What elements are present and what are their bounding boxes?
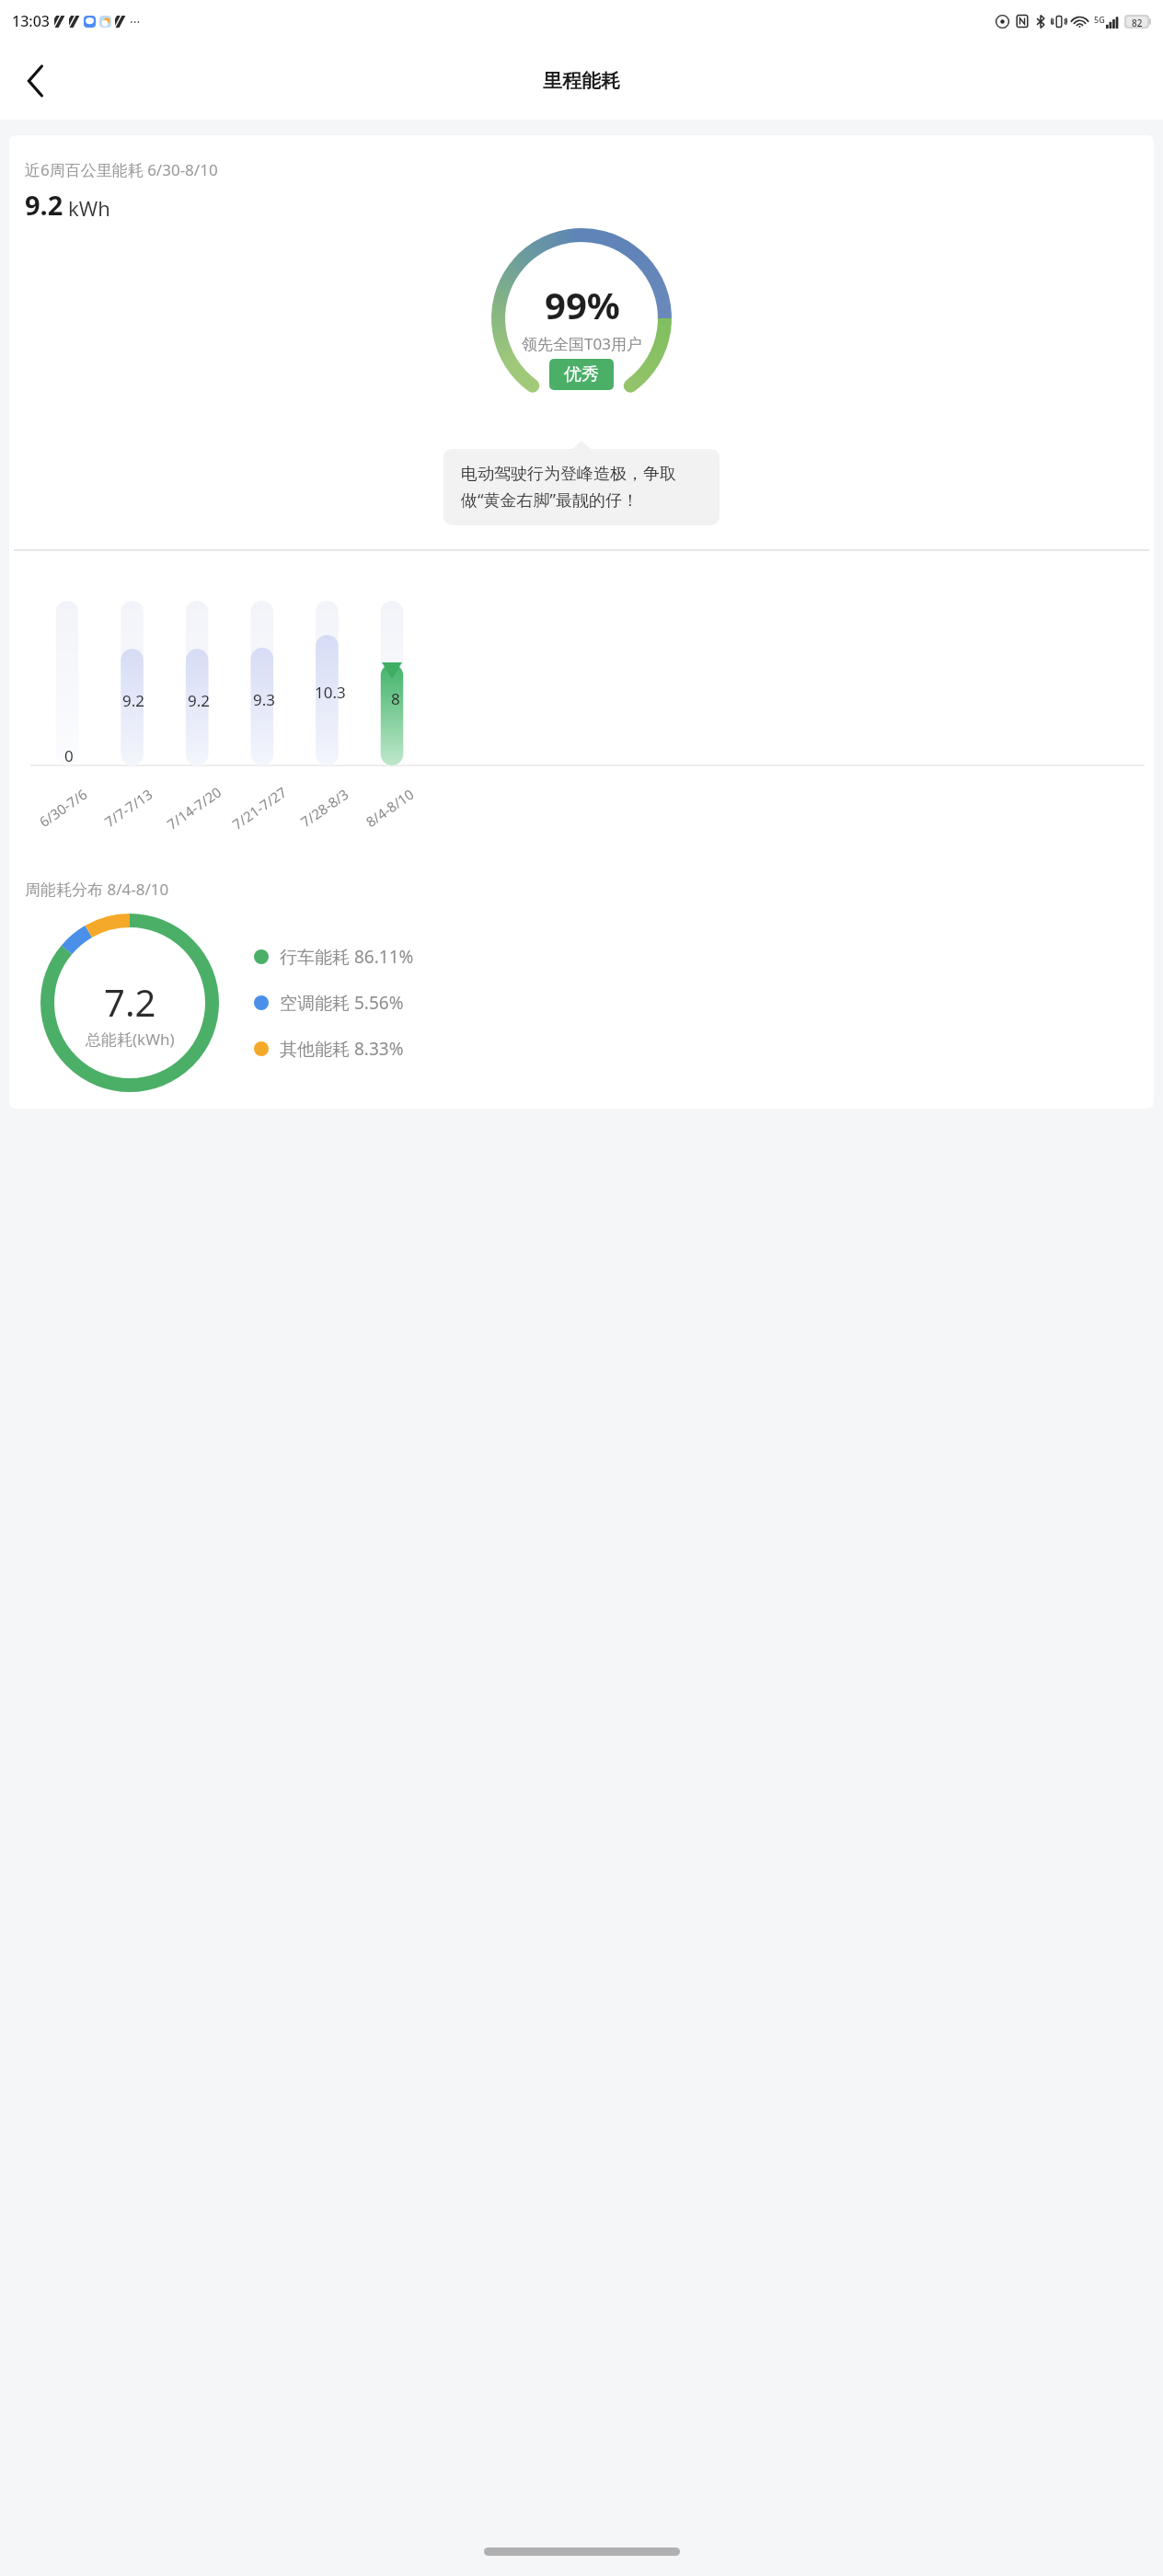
staticText: 周能耗分布 8/4-8/10 (25, 879, 169, 900)
staticText: 8 (391, 688, 400, 709)
staticText: 8/4-8/10 (362, 785, 417, 831)
staticText: 99% (545, 280, 620, 329)
staticText: ··· (130, 13, 141, 30)
staticText: 9.3 (253, 689, 276, 710)
button[interactable]: 其他能耗 8.33% (254, 1037, 404, 1061)
staticText: 82 (1132, 17, 1143, 27)
staticText: 近6周百公里能耗 6/30-8/10 (25, 159, 218, 180)
button[interactable]: 优秀 (549, 359, 614, 390)
staticText: 电动驾驶行为登峰造极，争取做“黄金右脚”最靓的仔！ (461, 464, 702, 511)
staticText: 空调能耗 5.56% (280, 991, 404, 1015)
staticText: 行车能耗 86.11% (280, 945, 414, 969)
staticText: 里程能耗 (543, 69, 620, 93)
staticText: 7/21-7/27 (229, 782, 290, 833)
staticText: kWh (68, 194, 110, 222)
staticText: 10.3 (315, 682, 346, 703)
staticText: 7/7-7/13 (101, 785, 156, 831)
staticText: 7/28-8/3 (297, 785, 352, 831)
button[interactable]: 行车能耗 86.11% (254, 945, 414, 969)
staticText: 7.2 (104, 977, 156, 1027)
staticText: 9.2 (188, 690, 211, 711)
staticText: 7/14-7/20 (163, 782, 225, 833)
staticText: 5G (1094, 14, 1105, 25)
staticText: 13:03 (12, 11, 50, 31)
staticText: 9.2 (122, 690, 145, 711)
staticText: 其他能耗 8.33% (280, 1037, 404, 1061)
staticText: 领先全国T03用户 (522, 333, 642, 354)
button[interactable]: 空调能耗 5.56% (254, 991, 404, 1015)
staticText: 优秀 (564, 363, 599, 385)
staticText: 总能耗(kWh) (86, 1029, 175, 1050)
staticText: 6/30-7/6 (36, 785, 91, 831)
staticText: 0 (64, 745, 74, 766)
staticText: 9.2 (25, 187, 63, 223)
button[interactable]: Back (7, 52, 64, 109)
